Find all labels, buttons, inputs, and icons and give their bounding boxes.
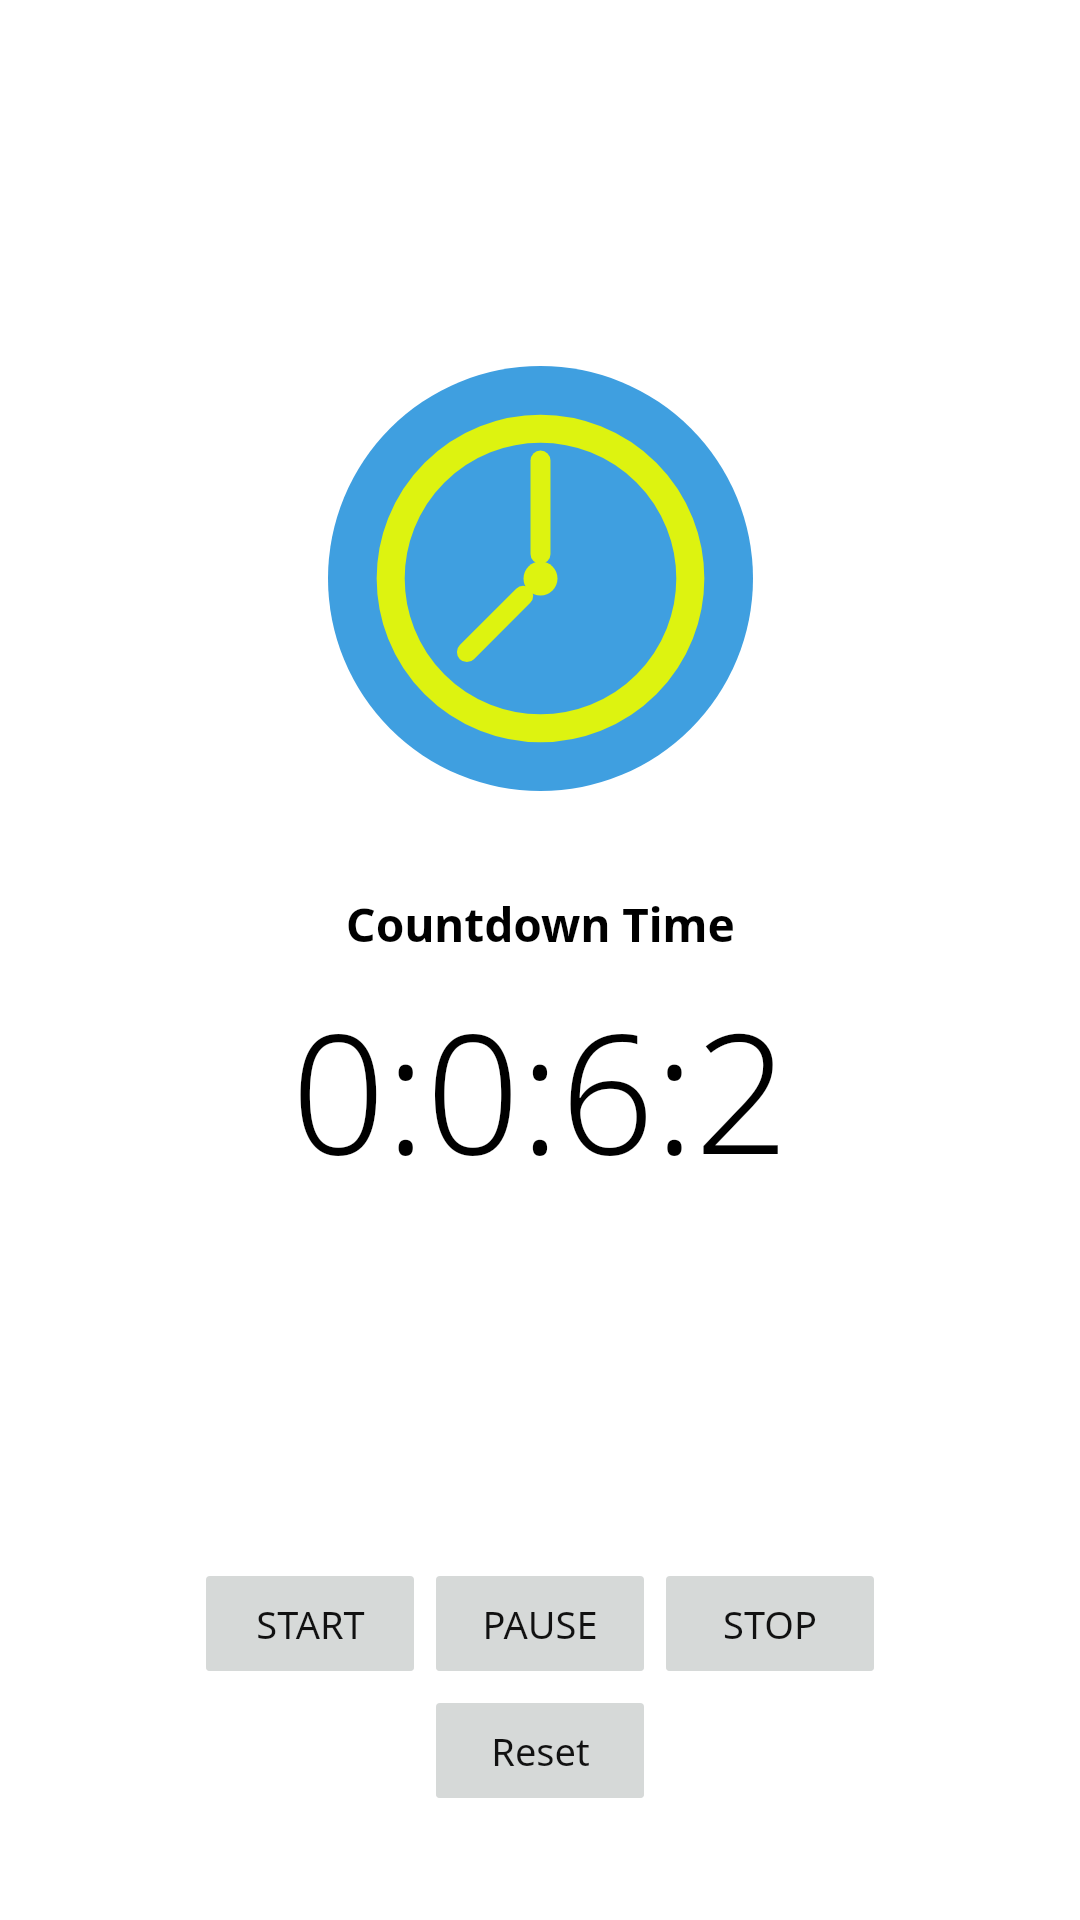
staticText: PAUSE — [482, 1598, 598, 1650]
staticText: Countdown Time — [346, 893, 735, 956]
staticText: 0:0:6:2 — [291, 978, 789, 1203]
button[interactable]: STOP — [666, 1576, 874, 1671]
staticText: START — [256, 1598, 365, 1650]
staticText: Reset — [491, 1725, 590, 1777]
staticText: STOP — [723, 1598, 817, 1650]
other: Countdown clock — [328, 366, 753, 791]
button[interactable]: Reset — [436, 1703, 644, 1798]
button[interactable]: PAUSE — [436, 1576, 644, 1671]
button[interactable]: START — [206, 1576, 414, 1671]
